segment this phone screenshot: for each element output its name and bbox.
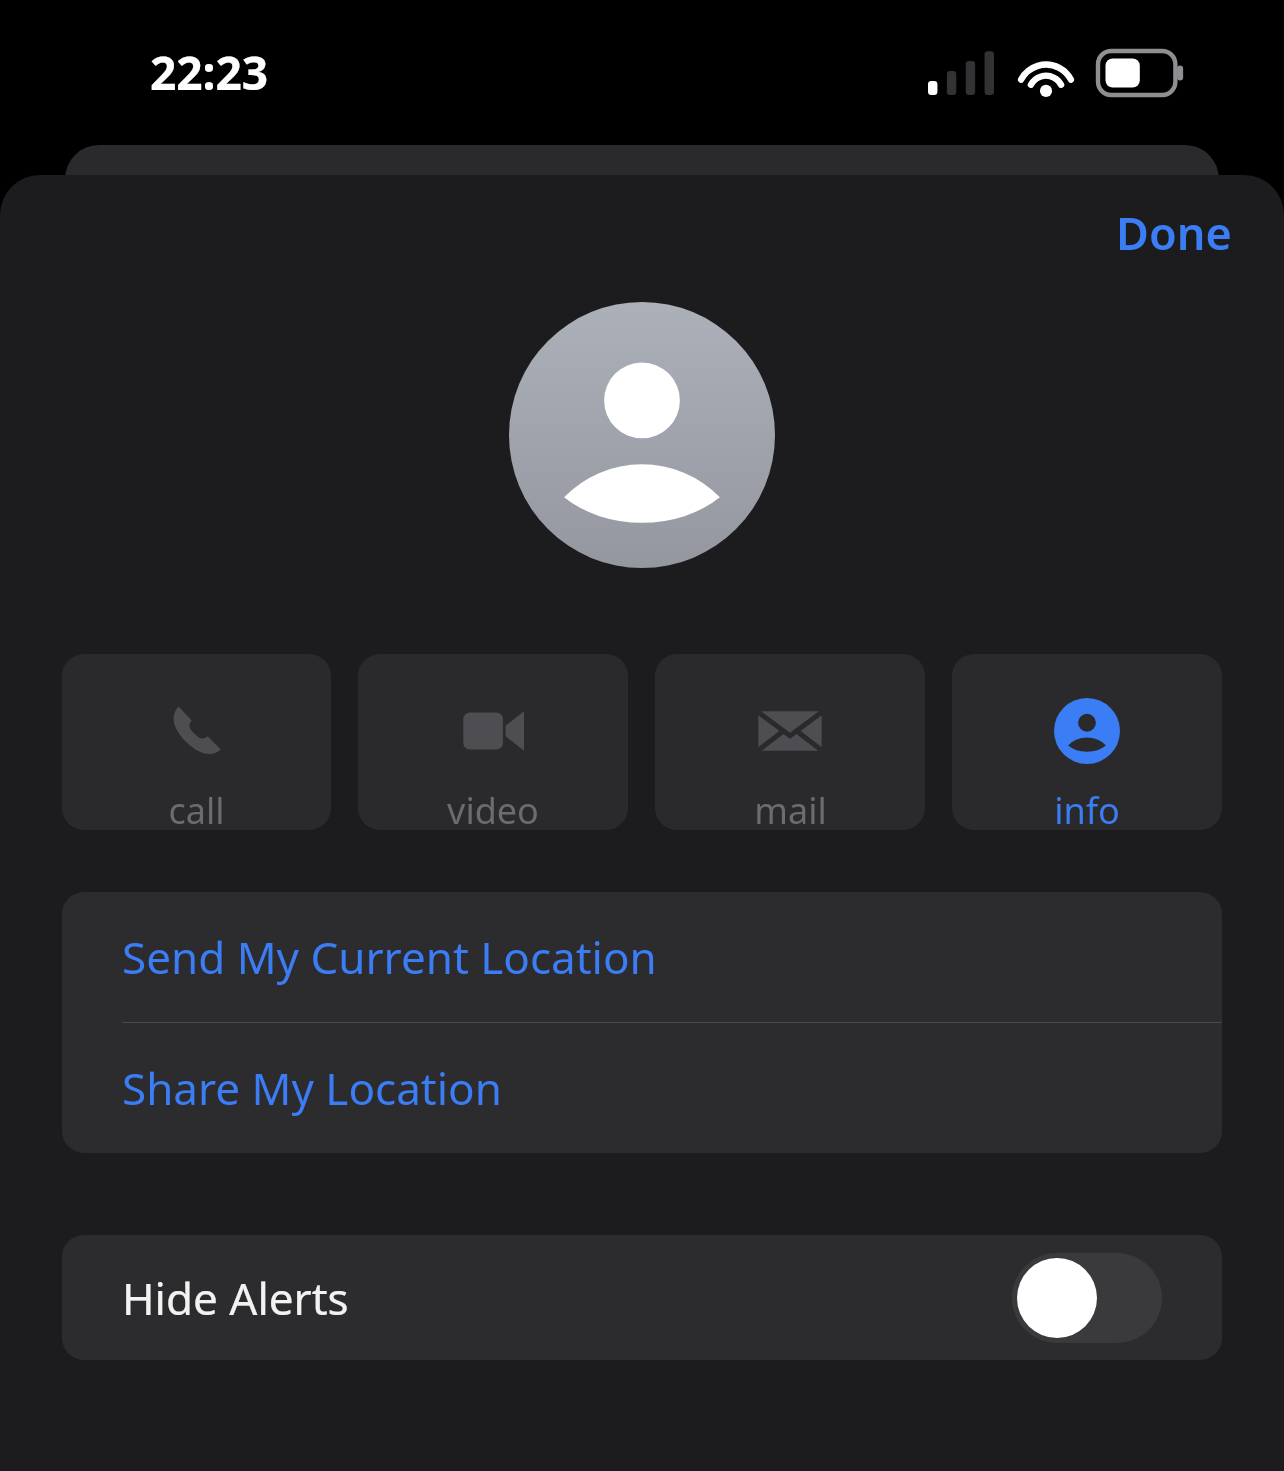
button[interactable]: call [62, 654, 331, 830]
staticText: mail [754, 786, 827, 830]
button[interactable]: mail [655, 654, 925, 830]
staticText: call [168, 786, 225, 830]
staticText: info [1054, 786, 1120, 830]
staticText: Done [1116, 202, 1232, 263]
button[interactable]: info [952, 654, 1222, 830]
staticText: Share My Location [122, 1058, 502, 1118]
staticText: Hide Alerts [122, 1268, 349, 1328]
staticText: 22:23 [150, 41, 269, 104]
button[interactable]: Done [1104, 194, 1244, 271]
staticText: video [447, 786, 539, 830]
button[interactable]: Hide Alerts [62, 1235, 1222, 1360]
button[interactable]: Share My Location [62, 1023, 1222, 1153]
button[interactable]: Hide Alerts toggle [1012, 1253, 1162, 1343]
button[interactable]: video [358, 654, 628, 830]
button[interactable]: Send My Current Location [62, 892, 1222, 1022]
staticText: Send My Current Location [122, 927, 657, 987]
